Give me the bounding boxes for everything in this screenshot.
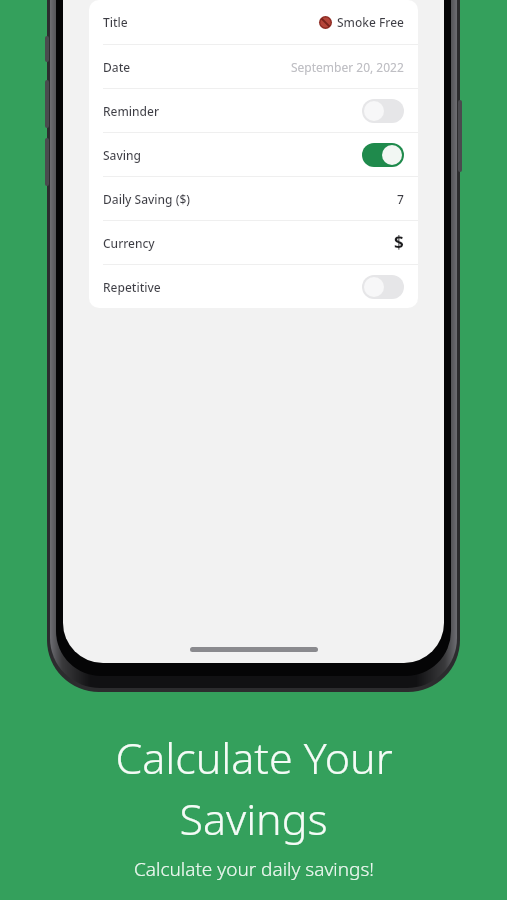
staticText: Daily Saving ($): [103, 191, 191, 207]
staticText: September 20, 2022: [291, 59, 404, 75]
button[interactable]: Saving: [89, 133, 418, 176]
staticText: $: [394, 231, 404, 254]
button[interactable]: Saving toggle: [362, 143, 404, 167]
staticText: Reminder: [103, 103, 160, 119]
staticText: Title: [103, 14, 128, 30]
button[interactable]: Daily Saving ($): [89, 177, 418, 220]
button[interactable]: Repetitive: [89, 265, 418, 308]
staticText: Calculate Your: [115, 728, 393, 787]
button[interactable]: Reminder toggle: [362, 99, 404, 123]
staticText: Repetitive: [103, 279, 161, 295]
button[interactable]: Reminder: [89, 89, 418, 132]
button[interactable]: Date: [89, 45, 418, 88]
staticText: Calculate your daily savings!: [134, 856, 374, 882]
staticText: Saving: [103, 147, 141, 163]
button[interactable]: Currency: [89, 221, 418, 264]
staticText: Currency: [103, 235, 155, 251]
staticText: Date: [103, 59, 131, 75]
button[interactable]: Repetitive toggle: [362, 275, 404, 299]
staticText: 7: [397, 191, 404, 207]
staticText: Smoke Free: [337, 14, 404, 30]
staticText: Savings: [179, 789, 328, 848]
button[interactable]: Title: [89, 0, 418, 44]
